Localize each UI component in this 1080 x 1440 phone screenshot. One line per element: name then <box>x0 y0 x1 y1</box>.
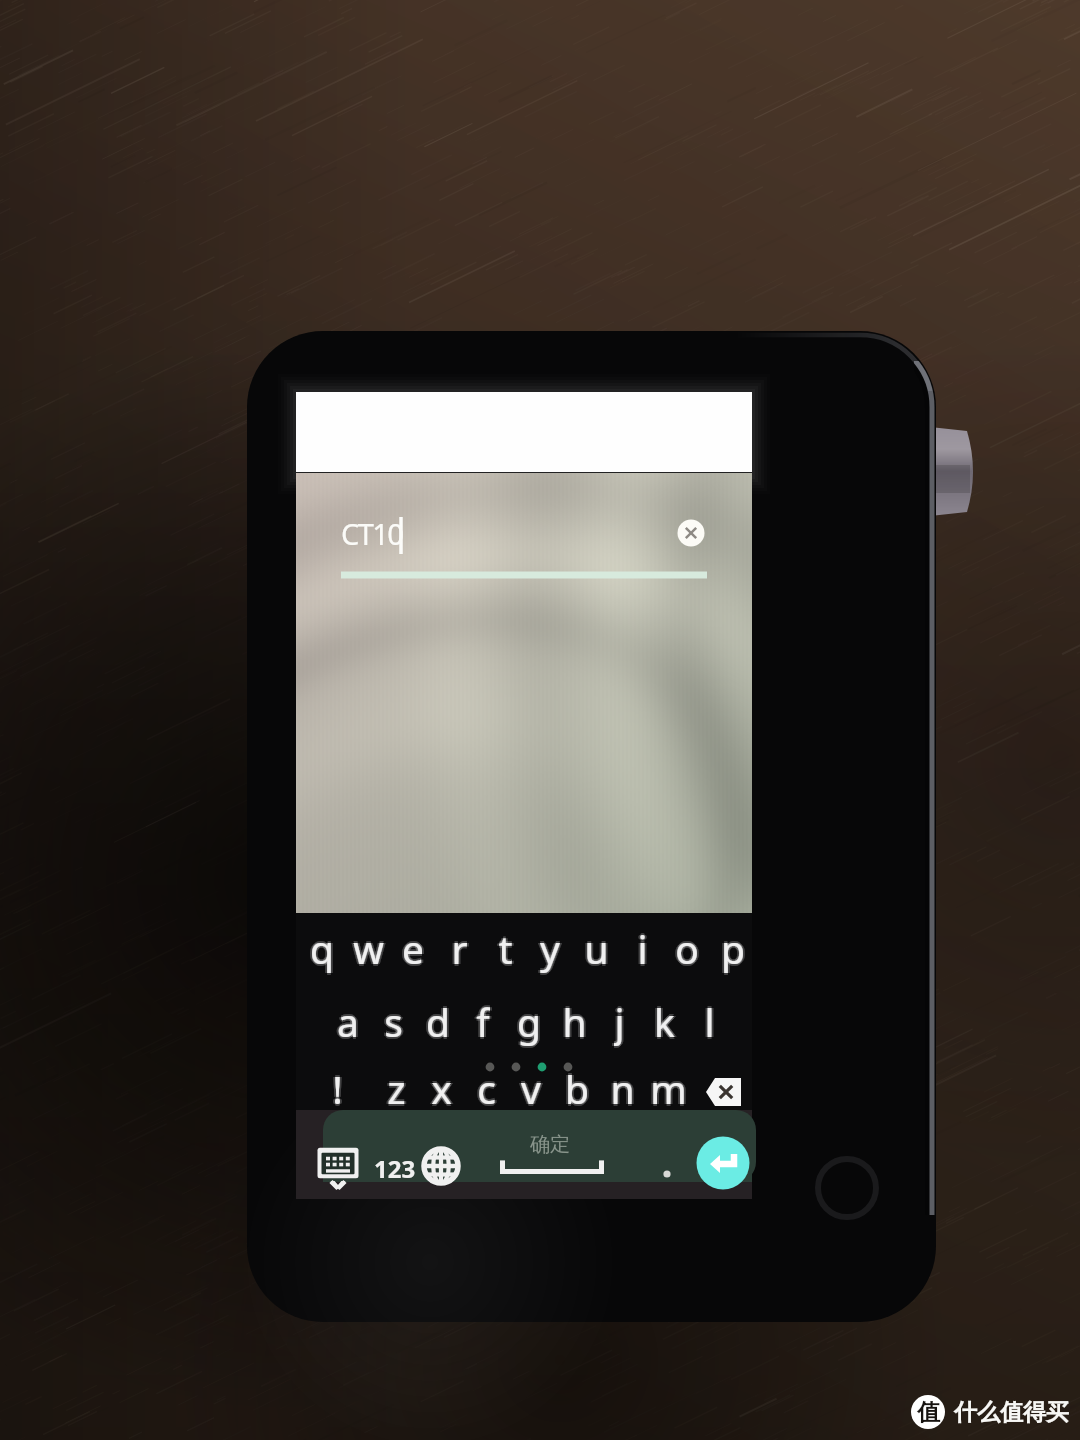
button[interactable]: g <box>505 995 553 1047</box>
staticText: f <box>476 997 490 1049</box>
staticText: t <box>498 924 513 976</box>
button[interactable]: u <box>572 922 620 974</box>
staticText: o <box>675 922 699 974</box>
staticText: t <box>498 922 513 974</box>
staticText: n <box>610 1064 635 1116</box>
staticText: e <box>402 922 424 974</box>
button[interactable]: Hide keyboard <box>313 1143 363 1193</box>
button[interactable]: i <box>618 922 666 974</box>
button[interactable]: l <box>685 995 733 1047</box>
button[interactable]: a <box>324 995 372 1047</box>
button[interactable]: Space <box>498 1155 608 1179</box>
staticText: s <box>382 995 401 1047</box>
staticText: y <box>542 922 562 974</box>
button[interactable]: s <box>369 995 417 1047</box>
staticText: w <box>353 924 384 976</box>
staticText: n <box>608 1062 633 1114</box>
staticText: x <box>431 1060 452 1112</box>
staticText: d <box>428 995 452 1047</box>
staticText: i <box>637 924 648 976</box>
button[interactable]: j <box>595 995 643 1047</box>
button[interactable]: y <box>526 922 574 974</box>
button[interactable]: Backspace <box>701 1079 750 1107</box>
button[interactable]: k <box>640 995 688 1047</box>
button[interactable]: Numbers <box>371 1148 419 1188</box>
staticText: d <box>426 993 450 1045</box>
button[interactable]: x <box>417 1062 465 1114</box>
button[interactable]: e <box>389 922 437 974</box>
button[interactable]: t <box>481 922 529 974</box>
button[interactable]: c <box>462 1062 510 1114</box>
button[interactable]: ! <box>313 1062 361 1114</box>
button[interactable]: d <box>414 995 462 1047</box>
staticText: g <box>517 997 541 1049</box>
staticText: ! <box>332 1064 343 1116</box>
staticText: h <box>562 995 587 1047</box>
staticText: c <box>475 1062 494 1114</box>
staticText: h <box>562 993 587 1045</box>
button[interactable]: h <box>550 995 598 1047</box>
staticText: 值 <box>917 1398 940 1427</box>
staticText: z <box>387 1064 406 1116</box>
staticText: e <box>404 922 426 974</box>
staticText: a <box>335 995 357 1047</box>
staticText: m <box>650 1064 687 1116</box>
staticText: g <box>517 993 541 1045</box>
staticText: l <box>702 995 713 1047</box>
button[interactable]: Period <box>652 1158 682 1184</box>
button[interactable]: m <box>644 1062 692 1114</box>
staticText: q <box>310 920 334 972</box>
staticText: v <box>521 1064 541 1116</box>
button[interactable]: v <box>507 1062 555 1114</box>
button[interactable]: Enter <box>697 1137 750 1190</box>
button[interactable]: q <box>298 922 346 974</box>
button[interactable]: Clear text <box>668 510 715 557</box>
staticText: i <box>637 920 648 972</box>
staticText: u <box>584 922 609 974</box>
staticText: z <box>385 1062 404 1114</box>
staticText: s <box>384 993 403 1045</box>
staticText: g <box>517 995 541 1047</box>
staticText: 123 <box>374 1152 416 1185</box>
staticText: b <box>567 1062 591 1114</box>
staticText: x <box>431 1064 452 1116</box>
staticText: d <box>424 995 448 1047</box>
button[interactable]: w <box>344 922 392 974</box>
staticText: h <box>560 995 585 1047</box>
staticText: a <box>337 995 359 1047</box>
staticText: l <box>704 995 715 1047</box>
staticText: q <box>312 922 336 974</box>
staticText: j <box>614 997 625 1049</box>
staticText: p <box>723 922 747 974</box>
staticText: u <box>582 922 607 974</box>
staticText: s <box>384 997 403 1049</box>
button[interactable]: p <box>709 922 757 974</box>
staticText: f <box>476 993 490 1045</box>
button[interactable]: z <box>372 1062 420 1114</box>
staticText: w <box>353 920 384 972</box>
staticText: b <box>565 1064 589 1116</box>
staticText: ! <box>332 1060 343 1112</box>
staticText: g <box>515 995 539 1047</box>
button[interactable]: b <box>553 1062 601 1114</box>
staticText: e <box>402 924 424 976</box>
staticText: j <box>616 995 627 1047</box>
button[interactable]: Change language <box>422 1148 459 1185</box>
staticText: p <box>721 924 745 976</box>
staticText: ! <box>332 1062 343 1114</box>
button[interactable]: o <box>663 922 711 974</box>
button[interactable]: n <box>598 1062 646 1114</box>
staticText: b <box>563 1062 587 1114</box>
staticText: o <box>677 922 701 974</box>
staticText: ! <box>334 1062 345 1114</box>
staticText: j <box>614 995 625 1047</box>
staticText: v <box>523 1062 543 1114</box>
button[interactable]: r <box>435 922 483 974</box>
staticText: c <box>479 1062 498 1114</box>
staticText: k <box>654 993 675 1045</box>
button[interactable]: f <box>459 995 507 1047</box>
button[interactable]: CT10 <box>341 514 403 553</box>
staticText: e <box>400 922 422 974</box>
staticText: h <box>562 997 587 1049</box>
staticText: s <box>384 995 403 1047</box>
